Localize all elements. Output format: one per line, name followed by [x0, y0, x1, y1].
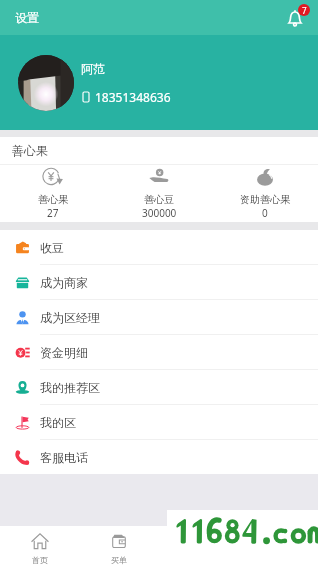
staticText: 成为区经理	[40, 310, 100, 325]
staticText: 18351348636	[95, 89, 171, 105]
button[interactable]: 善心豆	[106, 165, 212, 222]
staticText: 27	[47, 206, 59, 220]
staticText: 善心果	[12, 143, 48, 158]
staticText: 我的区	[40, 415, 76, 430]
staticText: 买单	[111, 555, 127, 565]
staticText: 设置	[15, 10, 39, 25]
staticText: 善心果	[38, 193, 68, 206]
staticText: 300000	[142, 206, 177, 220]
button[interactable]: 首页	[0, 526, 79, 565]
button[interactable]: 客服电话	[0, 440, 318, 474]
button[interactable]: 买单	[79, 526, 158, 565]
button[interactable]: 我的	[238, 526, 318, 565]
button[interactable]: 我的推荐区	[0, 370, 318, 404]
button[interactable]: 我的区	[0, 405, 318, 439]
staticText: 阿范	[81, 61, 105, 76]
staticText: 收豆	[40, 240, 64, 255]
staticText: 资金明细	[40, 345, 88, 360]
staticText: 客服电话	[40, 450, 88, 465]
staticText: 0	[262, 206, 268, 220]
staticText: 善心豆	[144, 193, 174, 206]
button[interactable]: 资金明细	[0, 335, 318, 369]
button[interactable]: 资助善心果	[212, 165, 318, 222]
button[interactable]: Notifications	[283, 5, 309, 31]
button[interactable]: 收豆	[0, 230, 318, 264]
staticText: 7	[302, 5, 307, 16]
button[interactable]: 成为区经理	[0, 300, 318, 334]
staticText: 成为商家	[40, 275, 88, 290]
button[interactable]: 消息	[158, 526, 238, 565]
button[interactable]: 成为商家	[0, 265, 318, 299]
staticText: 首页	[32, 555, 48, 565]
staticText: 资助善心果	[240, 193, 290, 206]
staticText: 我的推荐区	[40, 380, 100, 395]
button[interactable]: 善心果	[0, 165, 106, 222]
